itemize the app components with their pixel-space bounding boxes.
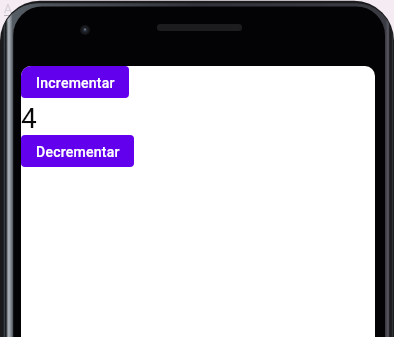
button[interactable]: Incrementar [21,66,129,98]
staticText: Incrementar [36,75,115,91]
staticText: Decrementar [36,144,120,160]
staticText: 4 [21,102,37,135]
staticText: A [4,2,12,16]
button[interactable]: Decrementar [21,135,134,167]
